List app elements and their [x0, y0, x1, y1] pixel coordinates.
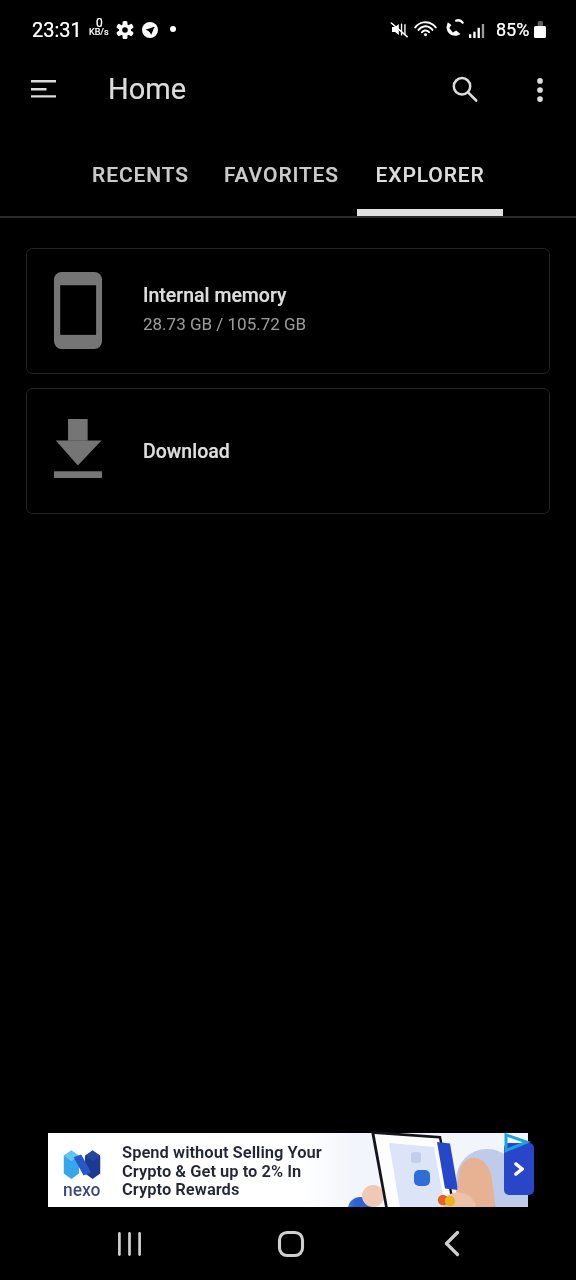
staticText: Spend without Selling Your Crypto & Get …	[122, 1143, 322, 1199]
staticText: RECENTS	[92, 163, 189, 188]
button[interactable]: FAVORITES	[206, 120, 357, 216]
staticText: EXPLORER	[375, 163, 485, 188]
button[interactable]: EXPLORER	[357, 120, 503, 216]
button[interactable]: Download	[26, 388, 550, 514]
staticText: 23:31	[32, 18, 82, 41]
button[interactable]: RECENTS	[74, 120, 206, 216]
staticText: Home	[108, 72, 187, 106]
staticText: nexo	[63, 1180, 101, 1201]
staticText: Internal memory	[143, 284, 287, 307]
button[interactable]: Search	[440, 65, 488, 113]
button[interactable]: Home	[243, 1207, 339, 1280]
button[interactable]: Back	[404, 1207, 500, 1280]
button[interactable]: Internal memory	[26, 248, 550, 374]
staticText: 28.73 GB / 105.72 GB	[143, 314, 307, 334]
staticText: 85%	[496, 19, 530, 40]
button[interactable]: Recent apps	[81, 1207, 177, 1280]
staticText: FAVORITES	[224, 163, 339, 188]
staticText: Download	[143, 440, 230, 463]
button[interactable]: Open navigation menu	[19, 65, 67, 113]
button[interactable]: More options	[516, 65, 564, 113]
staticText: 0	[96, 16, 103, 30]
staticText: KB/s	[89, 27, 109, 38]
button[interactable]: nexo	[48, 1133, 528, 1207]
